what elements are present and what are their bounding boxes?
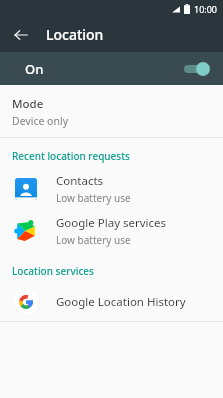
staticText: Recent location requests [12, 149, 130, 163]
staticText: Google Location History [56, 294, 186, 310]
button[interactable]: Google Location History [0, 283, 223, 321]
button[interactable]: Contacts [0, 168, 223, 210]
staticText: On [25, 60, 44, 78]
staticText: 10:00 [194, 3, 218, 15]
staticText: Mode [12, 96, 44, 112]
staticText: Google Play services [56, 215, 167, 231]
staticText: Low battery use [56, 233, 131, 247]
button[interactable]: Back [8, 22, 34, 48]
staticText: Location [46, 25, 104, 44]
button[interactable]: Google Play services [0, 210, 223, 252]
staticText: Low battery use [56, 191, 131, 205]
staticText: Device only [12, 114, 69, 128]
staticText: Location services [12, 264, 94, 278]
button[interactable]: On [0, 52, 223, 85]
staticText: Contacts [56, 173, 104, 189]
button[interactable]: Mode [0, 93, 223, 131]
